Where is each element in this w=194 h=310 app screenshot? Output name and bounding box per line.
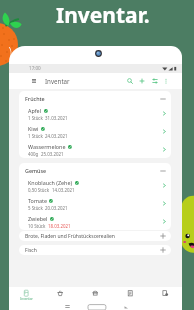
button[interactable]: More options xyxy=(161,76,170,85)
button[interactable] xyxy=(19,123,171,140)
button[interactable] xyxy=(43,287,77,301)
staticText: 17:00 xyxy=(29,65,41,71)
staticText: Inventar xyxy=(20,297,33,301)
button[interactable]: Search xyxy=(125,76,135,86)
button[interactable] xyxy=(19,213,171,230)
button[interactable]: Add item xyxy=(137,76,147,86)
button[interactable] xyxy=(19,177,171,194)
staticText: Zwiebel xyxy=(28,215,48,222)
staticText: 18.03.2021 xyxy=(48,223,71,229)
staticText: 1 Stück xyxy=(28,115,43,121)
staticText: Fisch xyxy=(25,247,37,254)
staticText: 0,50 Stück xyxy=(28,187,50,193)
button[interactable] xyxy=(147,287,182,301)
button[interactable]: Open navigation menu xyxy=(29,75,39,85)
staticText: 25.03.2021 xyxy=(41,151,64,157)
button[interactable] xyxy=(19,141,171,158)
button[interactable]: Gemüse xyxy=(19,163,171,178)
button[interactable]: Brote, Fladen und Frühstückscerealien xyxy=(19,231,171,241)
staticText: 31.03.2021 xyxy=(45,115,68,121)
staticText: 14.03.2021 xyxy=(52,187,75,193)
button[interactable]: Inventar xyxy=(9,287,43,301)
staticText: Knoblauch (Zehe) xyxy=(28,179,73,186)
button[interactable] xyxy=(19,195,171,212)
staticText: 20.03.2021 xyxy=(45,205,68,211)
staticText: Früchte xyxy=(25,95,45,102)
staticText: 400g xyxy=(28,151,39,157)
staticText: Brote, Fladen und Frühstückscerealien xyxy=(25,233,115,240)
staticText: Apfel xyxy=(28,107,42,114)
staticText: 1 Stück xyxy=(28,133,43,139)
staticText: 10 Stück xyxy=(28,223,46,229)
staticText: 24.03.2021 xyxy=(45,133,68,139)
button[interactable]: Fisch xyxy=(19,245,171,255)
button[interactable] xyxy=(77,287,112,301)
staticText: Tomate xyxy=(28,197,47,204)
button[interactable] xyxy=(112,287,147,301)
staticText: Inventar xyxy=(45,77,70,85)
button[interactable]: Sort xyxy=(150,76,160,86)
staticText: Inventar. xyxy=(56,1,150,30)
staticText: Gemüse xyxy=(25,167,47,174)
staticText: 5 Stück xyxy=(28,205,43,211)
button[interactable] xyxy=(19,105,171,122)
button[interactable]: Früchte xyxy=(19,91,171,106)
staticText: Kiwi xyxy=(28,125,39,132)
staticText: Wassermelone xyxy=(28,143,66,150)
